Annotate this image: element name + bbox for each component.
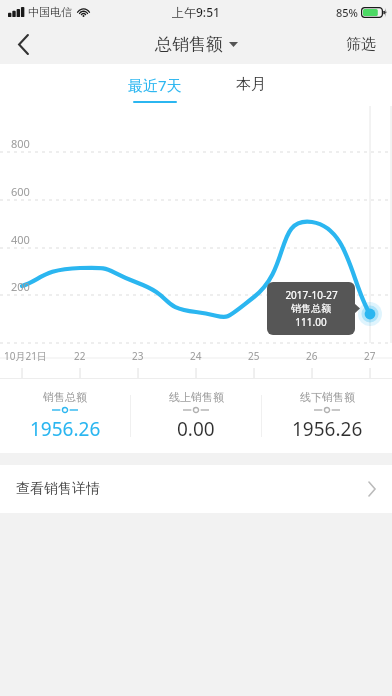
staticText: 1956.26 bbox=[30, 416, 101, 442]
staticText: 0.00 bbox=[177, 416, 215, 442]
button[interactable]: 本月 bbox=[222, 64, 280, 106]
button[interactable]: 线下销售额 bbox=[262, 390, 392, 442]
staticText: 查看销售详情 bbox=[16, 480, 100, 498]
button[interactable]: 线上销售额 bbox=[131, 390, 261, 442]
staticText: 111.00 bbox=[295, 315, 327, 329]
staticText: 22 bbox=[74, 349, 86, 363]
staticText: 中国电信 bbox=[28, 5, 72, 19]
staticText: 2017-10-27 bbox=[285, 288, 338, 302]
staticText: 27 bbox=[364, 349, 376, 363]
staticText: 总销售额 bbox=[155, 34, 223, 55]
staticText: 本月 bbox=[236, 75, 266, 94]
staticText: 24 bbox=[190, 349, 202, 363]
staticText: 线上销售额 bbox=[169, 390, 224, 404]
staticText: 销售总额 bbox=[291, 302, 331, 315]
button[interactable]: 总销售额 bbox=[155, 34, 238, 55]
staticText: 线下销售额 bbox=[300, 390, 355, 404]
staticText: 销售总额 bbox=[43, 390, 87, 404]
staticText: 600 bbox=[11, 184, 30, 199]
button[interactable]: 销售总额 bbox=[0, 390, 130, 442]
staticText: 10月21日 bbox=[4, 349, 47, 363]
staticText: 23 bbox=[132, 349, 144, 363]
staticText: 800 bbox=[11, 136, 30, 151]
staticText: 25 bbox=[248, 349, 260, 363]
staticText: 最近7天 bbox=[128, 75, 182, 95]
staticText: 上午9:51 bbox=[172, 4, 220, 20]
staticText: 85% bbox=[336, 5, 358, 20]
staticText: 400 bbox=[11, 232, 30, 247]
staticText: 筛选 bbox=[346, 35, 376, 54]
button[interactable]: 筛选 bbox=[346, 35, 376, 54]
button[interactable]: 查看销售详情 bbox=[0, 465, 392, 513]
staticText: 1956.26 bbox=[292, 416, 363, 442]
staticText: 200 bbox=[11, 279, 30, 294]
button[interactable]: 最近7天 bbox=[112, 64, 198, 106]
staticText: 26 bbox=[306, 349, 318, 363]
button[interactable]: 返回 bbox=[0, 24, 46, 64]
